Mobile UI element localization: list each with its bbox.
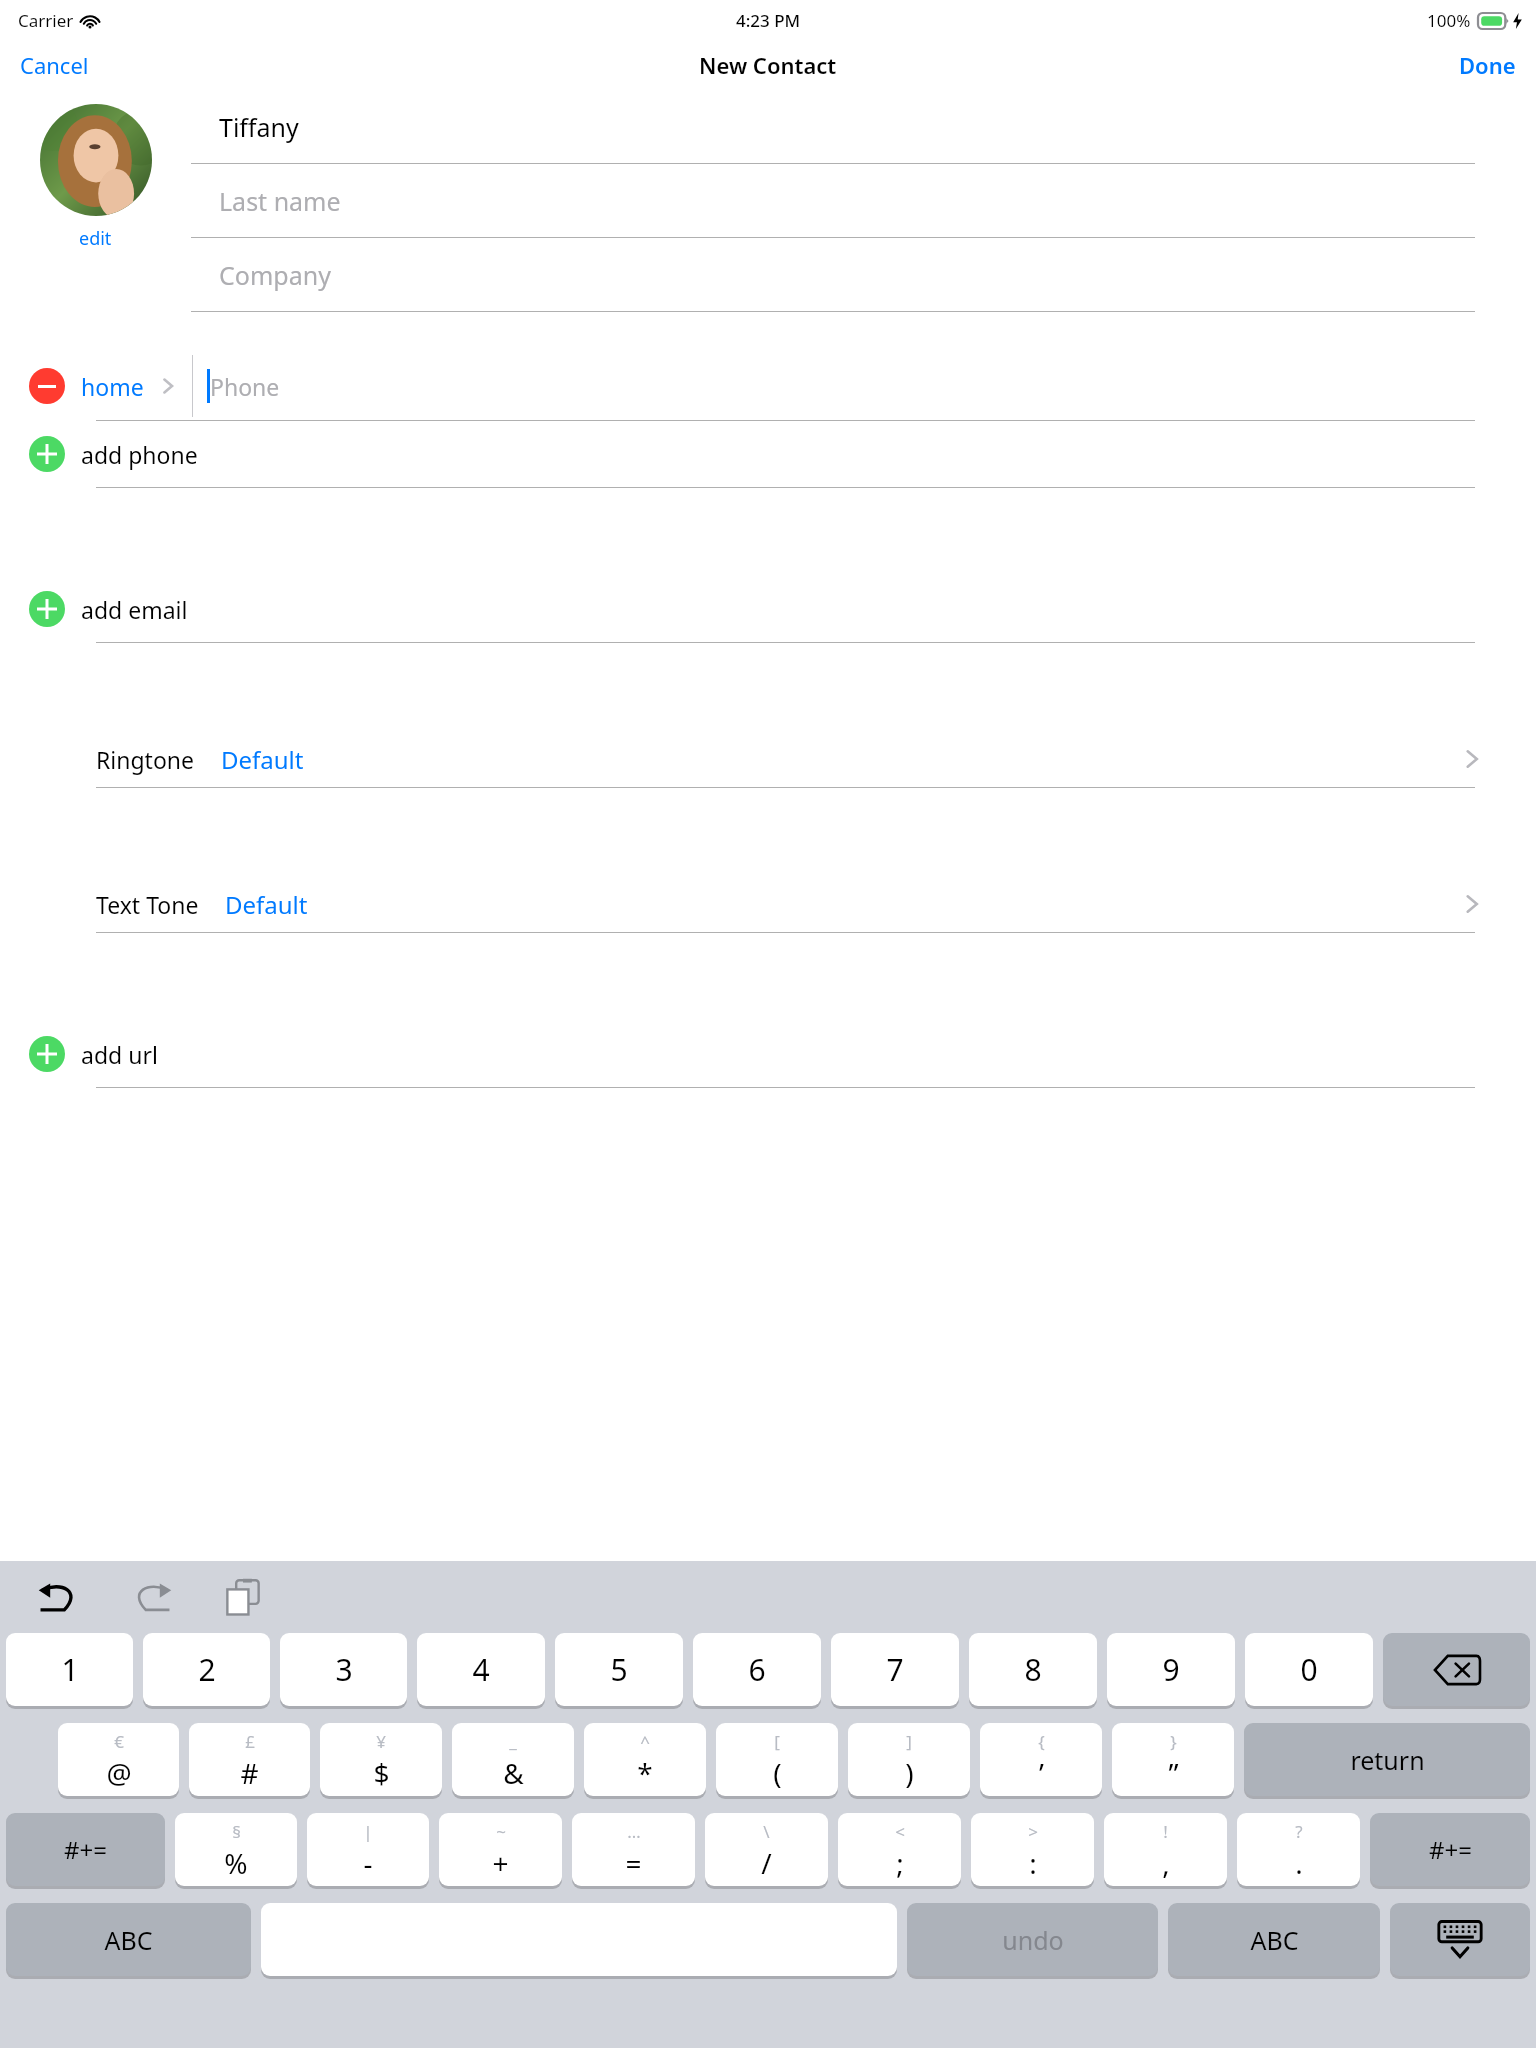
button[interactable]: return [1244, 1723, 1530, 1799]
staticText: $ [373, 1754, 390, 1792]
staticText: > [1028, 1820, 1038, 1843]
staticText: Ringtone [96, 744, 195, 775]
button[interactable]: } [1112, 1723, 1234, 1799]
button[interactable]: ¥ [320, 1723, 442, 1799]
staticText: Tiffany [219, 110, 299, 144]
button[interactable]: 7 [831, 1633, 959, 1709]
staticText: / [761, 1844, 772, 1882]
button[interactable]: 3 [280, 1633, 407, 1709]
button[interactable]: 4 [417, 1633, 545, 1709]
button[interactable]: ] [848, 1723, 970, 1799]
button[interactable]: ~ [439, 1813, 562, 1889]
staticText: Text Tone [96, 889, 199, 920]
button[interactable]: undo [907, 1903, 1158, 1979]
staticText: Default [221, 743, 304, 776]
staticText: ¥ [376, 1730, 386, 1753]
staticText: 1 [61, 1649, 79, 1690]
button[interactable]: { [980, 1723, 1102, 1799]
staticText: \ [763, 1820, 770, 1843]
button[interactable]: [ [716, 1723, 838, 1799]
staticText: < [895, 1820, 905, 1843]
button[interactable]: ? [1237, 1813, 1360, 1889]
button[interactable]: Space [261, 1903, 897, 1979]
button[interactable]: 9 [1107, 1633, 1235, 1709]
staticText: ‚ [1162, 1844, 1170, 1882]
button[interactable]: ABC [1168, 1903, 1380, 1979]
staticText: edit [79, 226, 112, 251]
staticText: ^ [640, 1730, 650, 1753]
staticText: { [1038, 1730, 1045, 1753]
staticText: § [232, 1820, 241, 1843]
staticText: + [492, 1844, 509, 1882]
button[interactable]: … [572, 1813, 695, 1889]
staticText: # [240, 1754, 259, 1792]
button[interactable]: Done [1439, 42, 1536, 88]
staticText: return [1350, 1743, 1425, 1777]
button[interactable]: add url [0, 1021, 1536, 1087]
staticText: } [1170, 1730, 1177, 1753]
button[interactable]: \ [705, 1813, 828, 1889]
button[interactable]: Remove phone [0, 352, 1536, 420]
button[interactable]: Paste [216, 1570, 270, 1624]
staticText: 4 [472, 1649, 490, 1690]
button[interactable]: Backspace [1383, 1633, 1530, 1709]
button[interactable]: Hide keyboard [1390, 1903, 1530, 1979]
button[interactable]: ^ [584, 1723, 706, 1799]
staticText: Company [219, 258, 331, 292]
button[interactable]: Tiffany [191, 90, 1475, 163]
staticText: ABC [1250, 1923, 1299, 1957]
button[interactable]: Last name [191, 164, 1475, 237]
staticText: ? [1295, 1820, 1303, 1843]
staticText: #+= [1429, 1833, 1472, 1866]
button[interactable]: Text Tone [0, 876, 1536, 932]
button[interactable]: add email [0, 576, 1536, 642]
staticText: undo [1002, 1923, 1064, 1957]
staticText: add phone [81, 439, 198, 470]
staticText: add email [81, 594, 188, 625]
staticText: . [1295, 1844, 1303, 1882]
button[interactable]: 6 [693, 1633, 821, 1709]
button[interactable]: § [175, 1813, 297, 1889]
staticText: #+= [64, 1833, 107, 1866]
staticText: 4:23 PM [736, 9, 801, 32]
staticText: 7 [886, 1649, 904, 1690]
button[interactable]: Undo [32, 1570, 86, 1624]
button[interactable]: edit [69, 224, 122, 253]
staticText: ] [906, 1730, 912, 1753]
button[interactable]: < [838, 1813, 961, 1889]
button[interactable]: 2 [143, 1633, 270, 1709]
staticText: Phone [210, 371, 280, 402]
staticText: 5 [610, 1649, 628, 1690]
staticText: Last name [219, 184, 341, 218]
button[interactable]: Ringtone [0, 731, 1536, 787]
other: add url [29, 1036, 65, 1072]
button[interactable]: add phone [0, 421, 1536, 487]
staticText: : [1029, 1844, 1037, 1882]
button[interactable]: £ [189, 1723, 310, 1799]
staticText: … [627, 1820, 641, 1843]
button[interactable]: #+= [6, 1813, 165, 1889]
staticText: - [363, 1844, 373, 1882]
button[interactable]: _ [452, 1723, 574, 1799]
button[interactable]: ! [1104, 1813, 1227, 1889]
button[interactable]: > [971, 1813, 1094, 1889]
button[interactable]: Edit photo [40, 104, 152, 216]
staticText: 3 [335, 1649, 353, 1690]
button[interactable]: Company [191, 238, 1475, 311]
button[interactable]: 1 [6, 1633, 133, 1709]
button[interactable]: Cancel [0, 42, 109, 88]
staticText: £ [245, 1730, 255, 1753]
button[interactable]: #+= [1370, 1813, 1530, 1889]
staticText: ; [896, 1844, 904, 1882]
button[interactable]: ABC [6, 1903, 251, 1979]
other: add email [29, 591, 65, 627]
button[interactable]: Redo [124, 1570, 178, 1624]
staticText: @ [106, 1754, 132, 1792]
button[interactable]: 5 [555, 1633, 683, 1709]
staticText: ) [905, 1754, 914, 1792]
button[interactable]: 8 [969, 1633, 1097, 1709]
staticText: Cancel [20, 50, 89, 80]
button[interactable]: 0 [1245, 1633, 1373, 1709]
button[interactable]: € [58, 1723, 179, 1799]
button[interactable]: | [307, 1813, 429, 1889]
